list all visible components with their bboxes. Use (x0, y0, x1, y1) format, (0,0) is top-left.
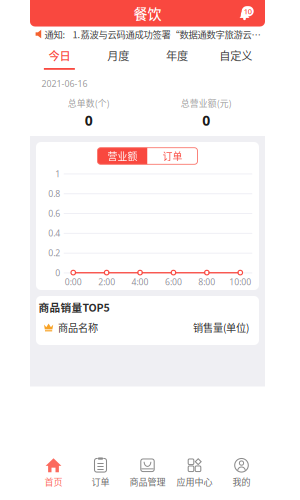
button[interactable]: 通知: (30, 26, 265, 42)
staticText: 8:00 (198, 276, 215, 288)
staticText: 6:00 (165, 276, 182, 288)
staticText: 总单数(个) (68, 96, 110, 109)
staticText: 商品销量TOP5 (38, 299, 109, 315)
staticText: 0 (85, 111, 93, 130)
button[interactable]: 首页 (30, 453, 77, 493)
button[interactable]: 订单 (77, 453, 124, 493)
staticText: 1.荔波与云码通成功签署“数据通数字旅游云实施运… (73, 27, 265, 41)
staticText: 首页 (44, 475, 62, 488)
button[interactable]: 今日 (30, 42, 89, 75)
staticText: 销售量(单位) (193, 320, 249, 335)
staticText: 0.2 (48, 247, 60, 259)
staticText: 营业额 (107, 149, 137, 163)
staticText: 月度 (107, 47, 129, 63)
staticText: 我的 (232, 475, 250, 488)
staticText: 应用中心 (176, 475, 212, 488)
staticText: 10 (244, 6, 252, 16)
staticText: 10:00 (229, 276, 251, 288)
staticText: 通知: (45, 27, 66, 41)
staticText: 订单 (162, 149, 182, 163)
button[interactable]: Notifications (236, 5, 256, 22)
staticText: 2:00 (98, 276, 115, 288)
staticText: 总营业额(元) (181, 96, 232, 109)
button[interactable]: 自定义 (206, 42, 265, 75)
button[interactable]: 商品管理 (124, 453, 171, 493)
staticText: 2021-06-16 (41, 77, 87, 89)
staticText: 商品名称 (58, 320, 98, 335)
staticText: 4:00 (132, 276, 149, 288)
staticText: 餐饮 (133, 3, 161, 23)
staticText: 0 (202, 111, 210, 130)
button[interactable]: 月度 (89, 42, 148, 75)
staticText: 商品管理 (129, 475, 165, 488)
staticText: 今日 (48, 47, 70, 63)
button[interactable]: 订单 (147, 148, 197, 164)
staticText: 0.8 (48, 188, 60, 199)
staticText: 0.6 (48, 207, 60, 219)
staticText: 1 (55, 168, 60, 180)
staticText: 自定义 (219, 47, 252, 63)
staticText: 0:00 (65, 276, 82, 288)
button[interactable]: 年度 (147, 42, 206, 75)
staticText: 0.4 (48, 227, 60, 239)
staticText: 年度 (166, 47, 188, 63)
button[interactable]: 营业额 (97, 148, 147, 164)
button[interactable]: 应用中心 (171, 453, 218, 493)
button[interactable]: 我的 (218, 453, 265, 493)
staticText: 0 (55, 267, 60, 279)
staticText: 订单 (91, 475, 109, 488)
